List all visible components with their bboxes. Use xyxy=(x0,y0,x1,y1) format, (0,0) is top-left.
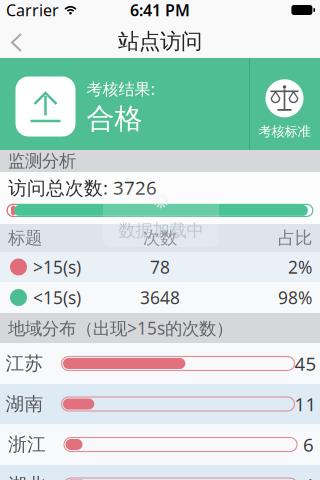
staticText: 98% xyxy=(278,286,312,309)
staticText: 4 xyxy=(303,473,314,480)
staticText: 2% xyxy=(288,255,312,278)
staticText: 站点访问 xyxy=(118,28,202,55)
staticText: 监测分析 xyxy=(8,150,76,172)
staticText: 数据加载中 xyxy=(118,220,203,241)
staticText: 浙江 xyxy=(8,433,46,456)
staticText: 地域分布（出现>15s的次数） xyxy=(8,316,233,339)
staticText: 考核结果: xyxy=(86,78,154,99)
staticText: 6 xyxy=(303,432,314,457)
staticText: 6:41 PM xyxy=(130,0,190,21)
staticText: 3648 xyxy=(140,286,180,309)
staticText: 湖南 xyxy=(5,392,43,415)
staticText: 78 xyxy=(150,255,170,278)
staticText: 江苏 xyxy=(5,352,43,375)
staticText: 11 xyxy=(294,392,316,416)
staticText: 湖北 xyxy=(8,473,46,480)
staticText: 考核标准 xyxy=(258,123,310,140)
staticText: 45 xyxy=(294,351,316,376)
button[interactable]: Back xyxy=(0,26,23,52)
staticText: 访问总次数: 3726 xyxy=(8,175,157,200)
staticText: 占比 xyxy=(278,227,312,249)
staticText: 次数 xyxy=(143,227,177,249)
button[interactable]: 考核标准 xyxy=(249,52,319,155)
staticText: 合格 xyxy=(86,101,142,136)
staticText: Carrier xyxy=(6,0,59,21)
staticText: <15(s) xyxy=(33,286,81,309)
staticText: 标题 xyxy=(8,227,42,249)
staticText: >15(s) xyxy=(33,255,81,278)
